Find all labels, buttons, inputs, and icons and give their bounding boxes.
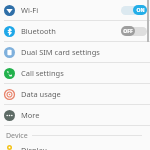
button[interactable]: Call settings bbox=[0, 63, 150, 83]
staticText: Wi-Fi bbox=[21, 5, 39, 15]
button[interactable]: Turn on bbox=[121, 26, 147, 36]
staticText: ON bbox=[136, 7, 145, 14]
button[interactable]: Turn off bbox=[121, 5, 147, 15]
staticText: Call settings bbox=[21, 68, 64, 78]
staticText: OFF bbox=[123, 28, 133, 35]
staticText: Bluetooth bbox=[21, 26, 56, 36]
button[interactable]: Bluetooth bbox=[0, 21, 150, 41]
button[interactable]: More bbox=[0, 105, 150, 125]
button[interactable]: Data usage bbox=[0, 84, 150, 104]
button[interactable]: Wi-Fi bbox=[0, 0, 150, 20]
button[interactable]: Display bbox=[0, 145, 150, 150]
staticText: Data usage bbox=[21, 89, 61, 99]
staticText: Device bbox=[6, 131, 28, 141]
staticText: More bbox=[21, 110, 40, 120]
button[interactable]: Dual SIM card settings bbox=[0, 42, 150, 62]
staticText: Dual SIM card settings bbox=[21, 47, 100, 57]
staticText: Display bbox=[21, 145, 47, 150]
